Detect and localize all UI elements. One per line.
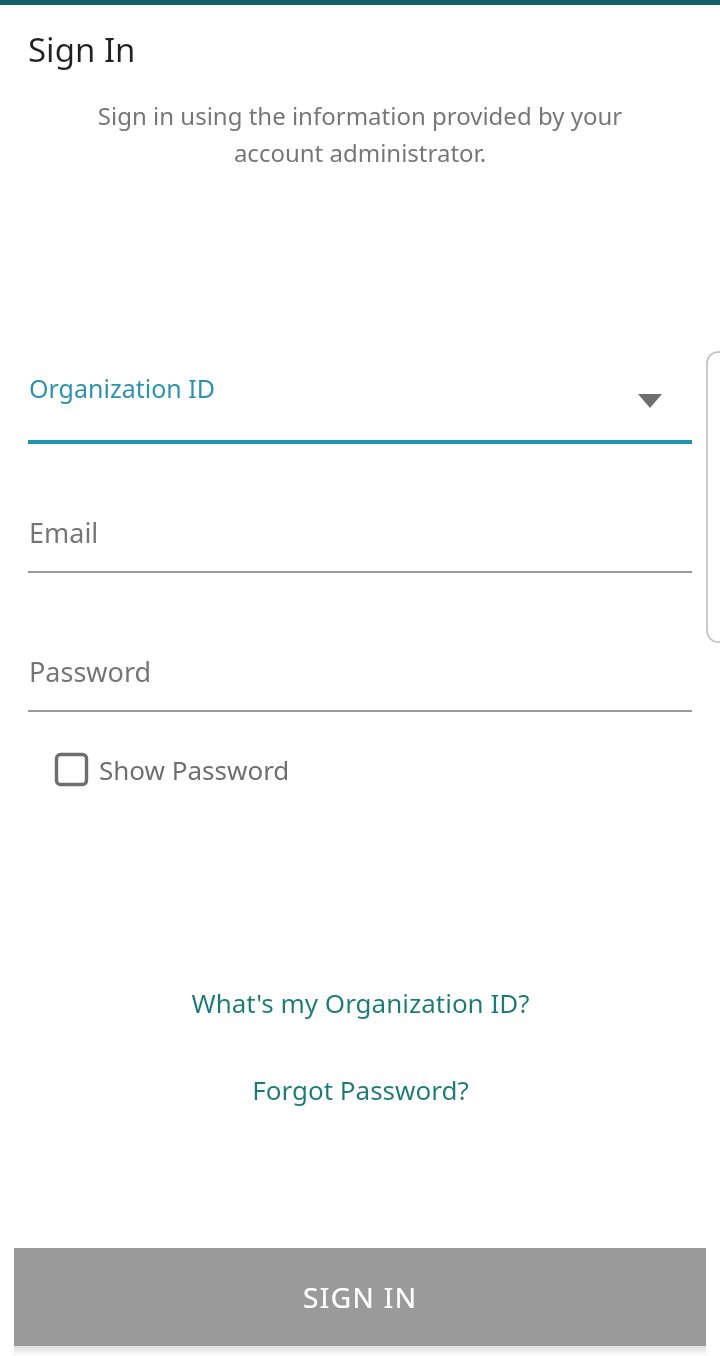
staticText: Password	[29, 653, 152, 690]
button[interactable]: Organization ID	[0, 362, 720, 444]
staticText: Organization ID	[29, 371, 215, 405]
button[interactable]: Email	[0, 492, 720, 573]
staticText: Show Password	[99, 752, 290, 787]
staticText: Email	[29, 514, 99, 551]
button[interactable]: SIGN IN	[14, 1248, 706, 1346]
staticText: Forgot Password?	[252, 1072, 469, 1107]
staticText: SIGN IN	[303, 1278, 418, 1316]
button[interactable]: Password	[0, 631, 720, 712]
other: Open organization list	[638, 394, 662, 408]
staticText: What's my Organization ID?	[191, 985, 530, 1020]
staticText: Sign in using the information provided b…	[62, 99, 658, 169]
staticText: Sign In	[28, 27, 136, 72]
button[interactable]: Show Password	[47, 744, 298, 795]
button[interactable]: Forgot Password?	[0, 1066, 720, 1113]
button[interactable]: What's my Organization ID?	[0, 979, 720, 1026]
